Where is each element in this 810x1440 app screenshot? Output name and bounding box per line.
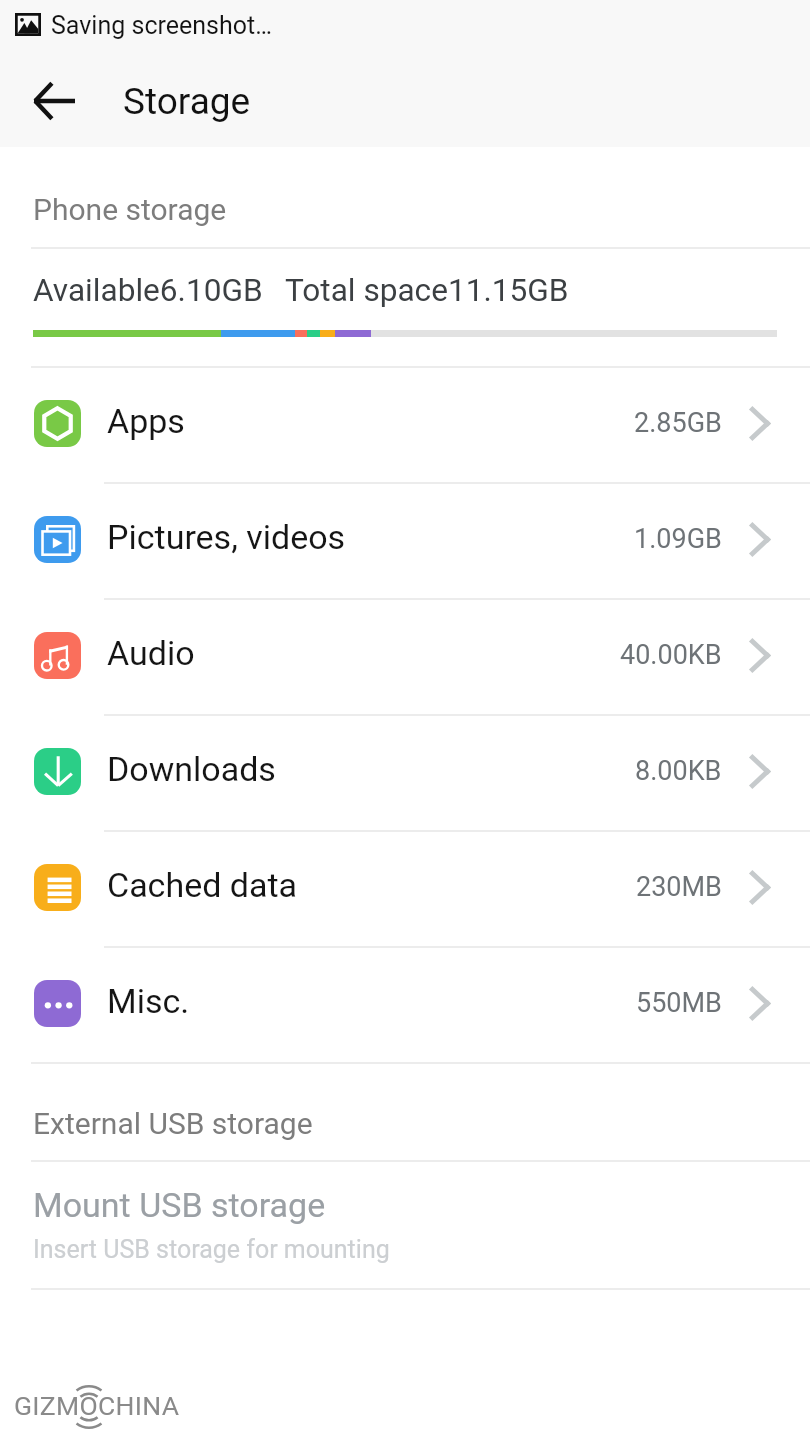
staticText: 40.00KB — [620, 639, 722, 671]
staticText: Storage — [123, 80, 251, 123]
staticText: Pictures, videos — [107, 517, 346, 557]
button[interactable]: Pictures, videos — [0, 484, 810, 598]
staticText: Audio — [107, 633, 195, 673]
staticText: Mount USB storage — [33, 1185, 326, 1225]
staticText: 1.09GB — [634, 523, 722, 555]
staticText: Insert USB storage for mounting — [33, 1235, 390, 1264]
staticText: GIZMOCHINA — [14, 1390, 180, 1421]
staticText: Apps — [107, 401, 185, 441]
staticText: Available6.10GB — [33, 272, 263, 309]
button[interactable]: Apps — [0, 368, 810, 482]
button[interactable]: Audio — [0, 600, 810, 714]
button[interactable]: Downloads — [0, 716, 810, 830]
staticText: 8.00KB — [635, 755, 722, 787]
staticText: Total space11.15GB — [285, 272, 569, 309]
staticText: Phone storage — [33, 192, 227, 227]
button[interactable]: Cached data — [0, 832, 810, 946]
staticText: Cached data — [107, 865, 298, 905]
staticText: Downloads — [107, 749, 276, 789]
staticText: 550MB — [636, 987, 722, 1019]
staticText: External USB storage — [33, 1106, 313, 1141]
staticText: Saving screenshot… — [51, 11, 272, 40]
staticText: Misc. — [107, 981, 190, 1021]
button[interactable]: Mount USB storage — [0, 1162, 810, 1288]
button[interactable]: Misc. — [0, 948, 810, 1062]
button[interactable]: Back — [0, 55, 107, 147]
staticText: 2.85GB — [634, 407, 722, 439]
staticText: 230MB — [636, 871, 722, 903]
